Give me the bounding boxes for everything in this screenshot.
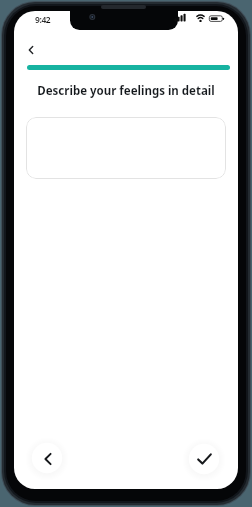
button[interactable] bbox=[32, 443, 62, 473]
button[interactable] bbox=[26, 117, 226, 179]
button[interactable] bbox=[189, 444, 219, 474]
staticText: 9:42 bbox=[35, 14, 51, 26]
button[interactable] bbox=[20, 39, 41, 60]
staticText: Describe your feelings in detail bbox=[37, 83, 215, 99]
